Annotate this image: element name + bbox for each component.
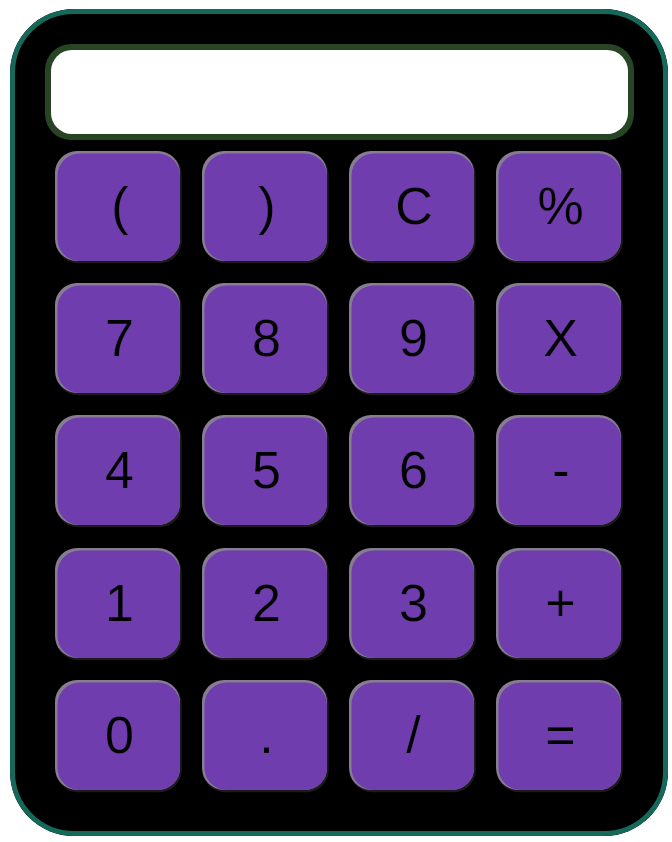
staticText: 5	[252, 441, 281, 499]
staticText: C	[395, 177, 433, 235]
button[interactable]: )	[202, 151, 327, 261]
staticText: 8	[252, 309, 281, 367]
staticText: /	[406, 706, 421, 764]
button[interactable]: 7	[55, 283, 180, 393]
staticText: 1	[105, 574, 134, 632]
button[interactable]: =	[496, 680, 621, 790]
other: Result display	[51, 50, 628, 134]
staticText: 3	[399, 574, 428, 632]
staticText: =	[545, 706, 576, 764]
staticText: 6	[399, 441, 428, 499]
button[interactable]: C	[349, 151, 474, 261]
staticText: X	[543, 309, 578, 367]
staticText: %	[537, 177, 584, 235]
button[interactable]: 5	[202, 415, 327, 525]
staticText: .	[259, 706, 274, 764]
button[interactable]: 3	[349, 548, 474, 658]
button[interactable]: 6	[349, 415, 474, 525]
button[interactable]: 8	[202, 283, 327, 393]
button[interactable]: -	[496, 415, 621, 525]
staticText: (	[111, 177, 129, 235]
button[interactable]: 0	[55, 680, 180, 790]
staticText: 2	[252, 574, 281, 632]
staticText: 7	[105, 309, 134, 367]
button[interactable]: X	[496, 283, 621, 393]
staticText: 0	[105, 706, 134, 764]
staticText: -	[552, 441, 570, 499]
button[interactable]: (	[55, 151, 180, 261]
button[interactable]: .	[202, 680, 327, 790]
button[interactable]: 2	[202, 548, 327, 658]
staticText: +	[545, 574, 576, 632]
button[interactable]: 4	[55, 415, 180, 525]
button[interactable]: 1	[55, 548, 180, 658]
staticText: 9	[399, 309, 428, 367]
staticText: )	[258, 177, 276, 235]
button[interactable]: %	[496, 151, 621, 261]
button[interactable]: 9	[349, 283, 474, 393]
button[interactable]: +	[496, 548, 621, 658]
staticText: 4	[105, 441, 134, 499]
button[interactable]: /	[349, 680, 474, 790]
